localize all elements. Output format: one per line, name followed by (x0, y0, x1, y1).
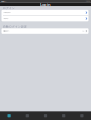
button[interactable]: 自動ログイン (1, 28, 88, 34)
button[interactable]: メールアドレス (1, 10, 88, 15)
staticText: パスワード (3, 18, 8, 19)
staticText: 自動ログイン (3, 30, 9, 32)
button[interactable]: Favorites (36, 111, 55, 120)
button[interactable]: More (73, 111, 91, 120)
button[interactable]: History (55, 111, 73, 120)
staticText: Login (40, 2, 51, 7)
staticText: ログイン (3, 6, 15, 10)
staticText: しない (82, 30, 85, 32)
staticText: 自動ログイン設定 (3, 25, 27, 28)
button[interactable]: Search (18, 111, 36, 120)
staticText: メールアドレス (3, 12, 10, 13)
button[interactable]: Home (0, 111, 18, 120)
button[interactable]: パスワード (1, 16, 88, 21)
staticText: ●●●○○ (1, 0, 6, 2)
staticText: 100% (86, 0, 90, 2)
